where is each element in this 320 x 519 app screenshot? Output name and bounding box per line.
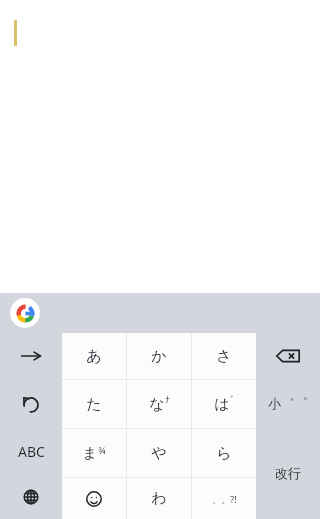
button[interactable] <box>62 478 126 519</box>
button[interactable]: や <box>127 429 191 477</box>
button[interactable]: Google Assistant <box>10 298 40 328</box>
staticText: や <box>151 444 167 463</box>
button[interactable]: な <box>127 380 191 428</box>
staticText: か <box>151 347 167 366</box>
staticText: な <box>149 395 165 414</box>
staticText: ¾ <box>98 444 106 456</box>
button[interactable]: あ <box>62 333 126 379</box>
staticText: ﾞ <box>230 395 235 404</box>
staticText: さ <box>216 347 232 366</box>
button[interactable]: 、。?! <box>192 478 256 519</box>
staticText: ま <box>82 444 98 463</box>
button[interactable]: さ <box>192 333 256 379</box>
button[interactable]: Undo <box>0 379 62 427</box>
button[interactable]: た <box>62 380 126 428</box>
button[interactable]: Change language <box>0 475 62 519</box>
button[interactable]: Next field <box>0 333 62 379</box>
button[interactable]: Backspace <box>256 333 320 379</box>
staticText: 小゛゜ <box>268 395 308 411</box>
staticText: た <box>86 395 102 414</box>
button[interactable]: ら <box>192 429 256 477</box>
button[interactable] <box>0 0 320 293</box>
staticText: ら <box>216 444 232 463</box>
staticText: ﾅ <box>165 395 170 404</box>
staticText: は <box>214 395 230 414</box>
staticText: ABC <box>18 442 45 461</box>
button[interactable]: 小゛゜ <box>256 379 320 427</box>
button[interactable]: わ <box>127 478 191 519</box>
staticText: あ <box>86 347 102 366</box>
button[interactable]: は <box>192 380 256 428</box>
button[interactable]: ま <box>62 429 126 477</box>
button[interactable]: か <box>127 333 191 379</box>
staticText: わ <box>151 489 167 508</box>
button[interactable]: 改行 <box>256 427 320 519</box>
button[interactable]: ABC <box>0 427 62 475</box>
staticText: 改行 <box>275 465 301 481</box>
staticText: 、。?! <box>212 493 237 505</box>
